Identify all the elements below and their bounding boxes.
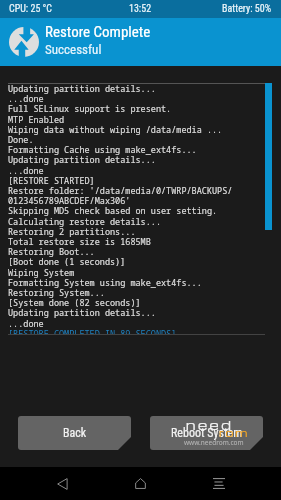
staticText: Restore folder: '/data/media/0/TWRP/BACK… xyxy=(8,186,233,196)
staticText: Formatting Cache using make_ext4fs... xyxy=(8,145,197,155)
staticText: ...done xyxy=(8,94,44,104)
staticText: www.needrom.com xyxy=(184,438,244,447)
staticText: Reboot System xyxy=(171,426,243,440)
staticText: [System done (82 seconds)] xyxy=(8,298,141,308)
button[interactable]: Home xyxy=(118,467,163,500)
staticText: [RESTORE COMPLETED IN 89 SECONDS] xyxy=(8,329,177,335)
staticText: Wiping data without wiping /data/media .… xyxy=(8,125,223,135)
staticText: Restoring Boot... xyxy=(8,247,95,257)
staticText: Done. xyxy=(8,135,34,145)
staticText: CPU: 25 °C xyxy=(9,3,53,15)
staticText: Skipping MD5 check based on user setting… xyxy=(8,206,218,216)
staticText: Updating partition details... xyxy=(8,84,156,94)
staticText: [Boot done (1 seconds)] xyxy=(8,257,126,267)
staticText: Restore Complete xyxy=(45,23,151,41)
button[interactable]: Back xyxy=(18,416,131,450)
staticText: Updating partition details... xyxy=(8,308,156,318)
staticText: [RESTORE STARTED] xyxy=(8,176,95,186)
staticText: Formatting System using make_ext4fs... xyxy=(8,278,202,288)
staticText: need xyxy=(186,416,234,433)
button[interactable]: Reboot System xyxy=(150,416,263,450)
button[interactable]: Restore Complete xyxy=(0,18,281,66)
staticText: Restoring 2 partitions... xyxy=(8,227,136,237)
staticText: MTP Enabled xyxy=(8,115,65,125)
staticText: Battery: 50% xyxy=(222,3,271,15)
button[interactable]: Back xyxy=(40,467,85,500)
staticText: Updating partition details... xyxy=(8,155,156,165)
staticText: ...done xyxy=(8,166,44,176)
staticText: 0123456789ABCDEF/Max306' xyxy=(8,196,131,206)
staticText: Total restore size is 1685MB xyxy=(8,237,151,247)
staticText: Calculating restore details... xyxy=(8,217,162,227)
button[interactable]: Recent apps xyxy=(196,467,241,500)
staticText: 13:52 xyxy=(129,3,152,15)
staticText: Full SELinux support is present. xyxy=(8,104,172,114)
staticText: rom xyxy=(219,425,250,439)
staticText: Successful xyxy=(45,42,102,57)
staticText: Wiping System xyxy=(8,268,75,278)
staticText: Back xyxy=(63,426,87,440)
staticText: ...done xyxy=(8,319,44,329)
staticText: Restoring System... xyxy=(8,288,105,298)
